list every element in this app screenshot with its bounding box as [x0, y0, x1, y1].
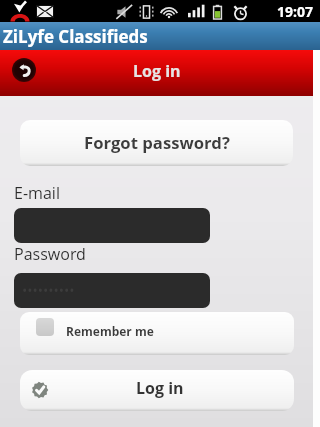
button[interactable]: Back [12, 58, 36, 82]
button[interactable]: Log in [20, 370, 294, 411]
staticText: 19:07 [277, 2, 313, 21]
staticText: ZiLyfe Classifieds [3, 25, 148, 48]
staticText: Remember me [66, 323, 154, 339]
staticText: Log in [133, 60, 181, 82]
staticText: Log in [136, 377, 184, 399]
staticText: •••••••••• [22, 281, 75, 300]
button[interactable]: Forgot password? [20, 120, 293, 166]
button[interactable]: •••••••••• [14, 273, 210, 308]
button[interactable]: Remember me [20, 312, 294, 355]
staticText: E-mail [14, 182, 60, 204]
staticText: Forgot password? [84, 131, 230, 154]
button[interactable] [14, 208, 210, 243]
staticText: Password [14, 243, 86, 265]
